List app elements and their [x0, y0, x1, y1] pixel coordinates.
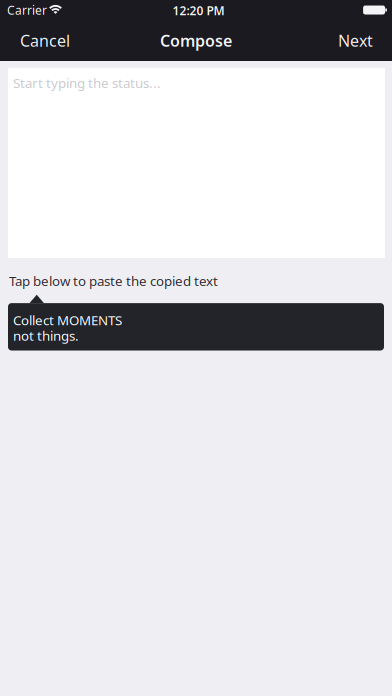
button[interactable]: Cancel	[10, 20, 80, 61]
staticText: Cancel	[20, 30, 70, 51]
staticText: Tap below to paste the copied text	[9, 272, 218, 290]
staticText: Carrier	[7, 2, 47, 18]
button[interactable]: Start typing the status...	[0, 68, 385, 258]
button[interactable]: Collect MOMENTS	[0, 295, 384, 350]
staticText: not things.	[13, 327, 79, 344]
staticText: Next	[338, 30, 373, 51]
staticText: Compose	[160, 30, 232, 51]
staticText: Collect MOMENTS	[13, 311, 122, 329]
button[interactable]: Next	[328, 20, 383, 61]
staticText: 12:20 PM	[172, 2, 224, 18]
staticText: Start typing the status...	[13, 74, 161, 92]
